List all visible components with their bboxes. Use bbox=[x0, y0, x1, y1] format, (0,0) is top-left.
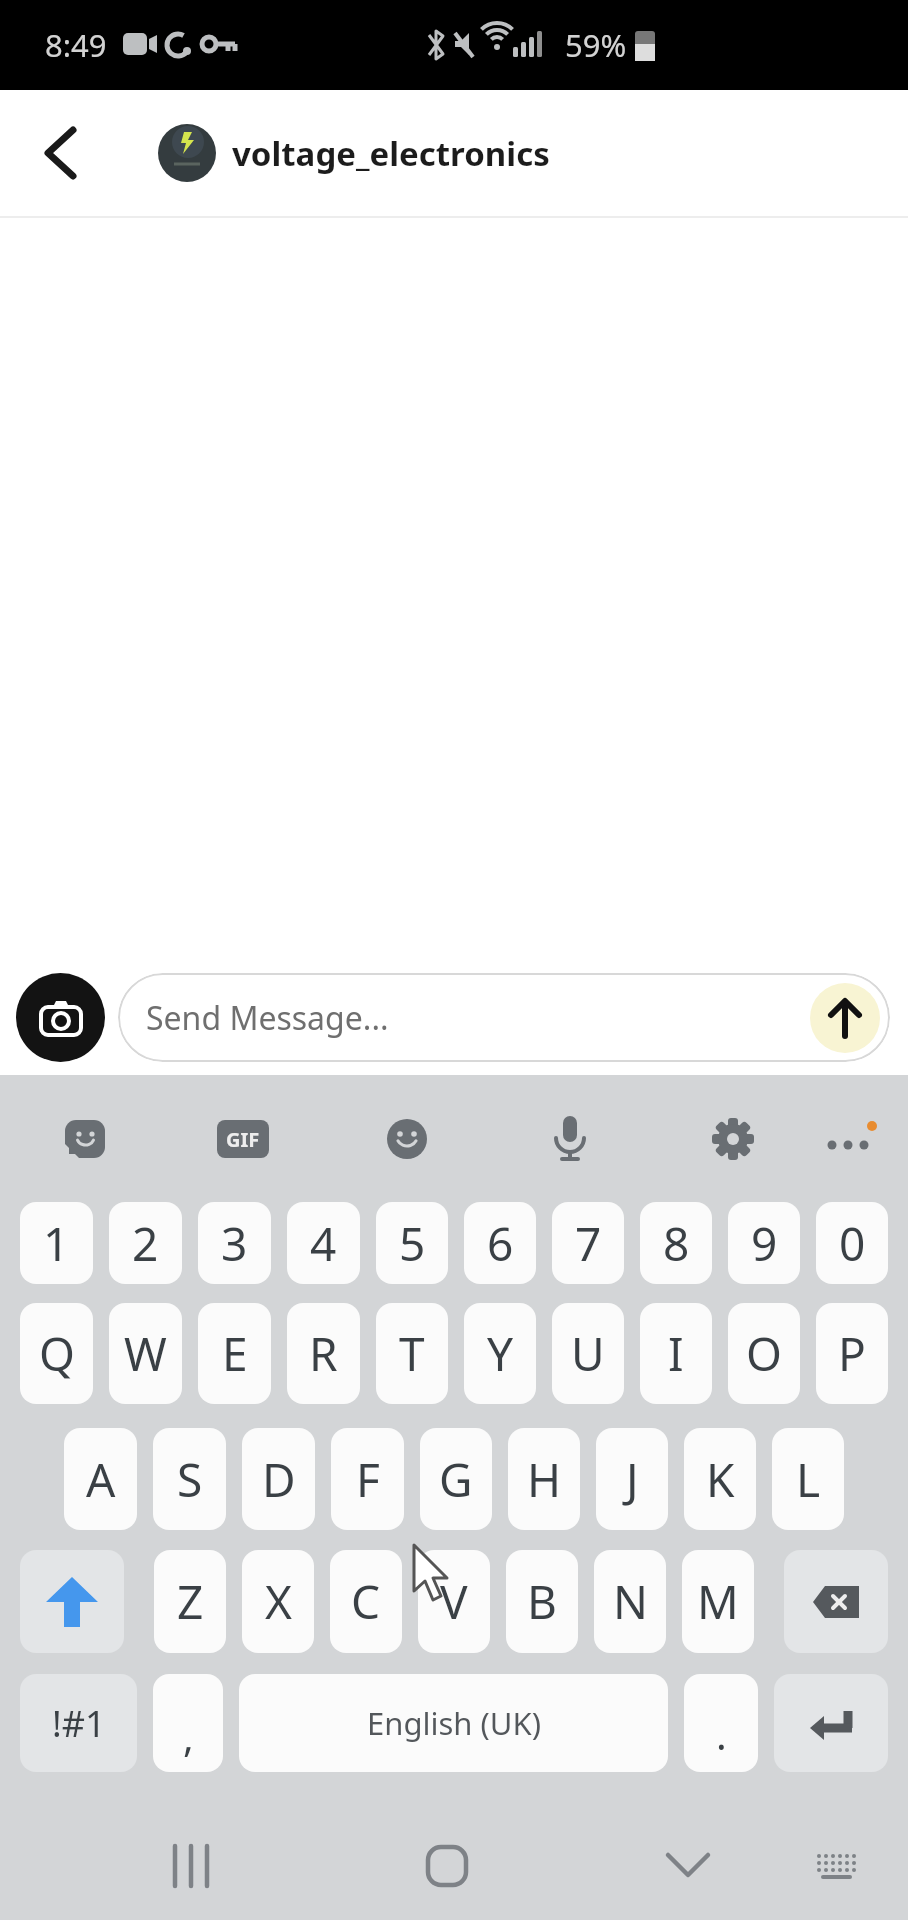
staticText: 9 bbox=[751, 1212, 778, 1275]
staticText: . bbox=[716, 1707, 727, 1761]
staticText: P bbox=[838, 1322, 866, 1385]
button[interactable] bbox=[791, 1821, 881, 1911]
button[interactable]: L bbox=[772, 1428, 844, 1530]
button[interactable]: E bbox=[198, 1303, 271, 1404]
button[interactable]: 3 bbox=[198, 1202, 271, 1284]
button[interactable]: . bbox=[684, 1674, 758, 1772]
staticText: K bbox=[706, 1448, 735, 1511]
button[interactable] bbox=[709, 1115, 757, 1163]
staticText: D bbox=[262, 1448, 296, 1511]
staticText: !#1 bbox=[52, 1699, 106, 1748]
staticText: W bbox=[124, 1322, 167, 1385]
button[interactable]: 2 bbox=[109, 1202, 182, 1284]
button[interactable] bbox=[824, 1111, 880, 1167]
button[interactable]: D bbox=[242, 1428, 315, 1530]
button[interactable] bbox=[20, 1550, 124, 1653]
button[interactable]: G bbox=[420, 1428, 492, 1530]
button[interactable]: F bbox=[331, 1428, 404, 1530]
button[interactable] bbox=[28, 121, 92, 185]
button[interactable]: V bbox=[418, 1550, 490, 1653]
button[interactable]: Q bbox=[20, 1303, 93, 1404]
button[interactable] bbox=[402, 1821, 492, 1911]
staticText: U bbox=[571, 1322, 605, 1385]
staticText: Z bbox=[177, 1570, 204, 1633]
button[interactable]: 6 bbox=[464, 1202, 536, 1284]
staticText: V bbox=[440, 1570, 468, 1633]
button[interactable] bbox=[643, 1821, 733, 1911]
button[interactable]: 4 bbox=[287, 1202, 360, 1284]
staticText: 7 bbox=[575, 1212, 602, 1275]
button[interactable]: H bbox=[508, 1428, 580, 1530]
button[interactable]: M bbox=[682, 1550, 754, 1653]
staticText: 0 bbox=[839, 1212, 866, 1275]
staticText: A bbox=[86, 1448, 116, 1511]
button[interactable]: , bbox=[153, 1674, 223, 1772]
staticText: 1 bbox=[43, 1212, 70, 1275]
button[interactable]: K bbox=[684, 1428, 756, 1530]
staticText: N bbox=[613, 1570, 648, 1633]
staticText: I bbox=[668, 1322, 684, 1385]
button[interactable]: 8 bbox=[640, 1202, 712, 1284]
staticText: Send Message... bbox=[146, 996, 389, 1040]
button[interactable]: U bbox=[552, 1303, 624, 1404]
staticText: E bbox=[222, 1322, 248, 1385]
button[interactable]: English (UK) bbox=[239, 1674, 668, 1772]
staticText: voltage_electronics bbox=[232, 131, 550, 176]
staticText: L bbox=[796, 1448, 821, 1511]
button[interactable] bbox=[62, 1115, 110, 1163]
staticText: 8:49 bbox=[45, 24, 107, 66]
staticText: Q bbox=[39, 1322, 75, 1385]
button[interactable]: P bbox=[816, 1303, 888, 1404]
staticText: 6 bbox=[487, 1212, 514, 1275]
button[interactable]: W bbox=[109, 1303, 182, 1404]
staticText: 3 bbox=[221, 1212, 248, 1275]
button[interactable] bbox=[383, 1115, 431, 1163]
staticText: , bbox=[183, 1709, 194, 1763]
button[interactable]: N bbox=[594, 1550, 666, 1653]
button[interactable]: C bbox=[330, 1550, 402, 1653]
staticText: B bbox=[527, 1570, 557, 1633]
staticText: 8 bbox=[663, 1212, 690, 1275]
button[interactable]: 0 bbox=[816, 1202, 888, 1284]
button[interactable]: Z bbox=[154, 1550, 226, 1653]
staticText: S bbox=[177, 1448, 203, 1511]
staticText: English (UK) bbox=[367, 1702, 541, 1744]
button[interactable]: A bbox=[64, 1428, 137, 1530]
button[interactable]: O bbox=[728, 1303, 800, 1404]
staticText: T bbox=[399, 1322, 425, 1385]
button[interactable]: 1 bbox=[20, 1202, 93, 1284]
button[interactable]: I bbox=[640, 1303, 712, 1404]
staticText: Y bbox=[487, 1322, 514, 1385]
button[interactable]: X bbox=[242, 1550, 314, 1653]
button[interactable]: 5 bbox=[376, 1202, 448, 1284]
staticText: J bbox=[626, 1448, 639, 1511]
staticText: H bbox=[527, 1448, 562, 1511]
button[interactable]: Y bbox=[464, 1303, 536, 1404]
staticText: 5 bbox=[399, 1212, 426, 1275]
button[interactable]: B bbox=[506, 1550, 578, 1653]
button[interactable]: 9 bbox=[728, 1202, 800, 1284]
staticText: C bbox=[351, 1570, 381, 1633]
staticText: 59% bbox=[565, 24, 627, 66]
staticText: GIF bbox=[226, 1126, 260, 1153]
staticText: X bbox=[265, 1570, 292, 1633]
button[interactable]: S bbox=[153, 1428, 226, 1530]
staticText: M bbox=[697, 1570, 739, 1633]
button[interactable]: !#1 bbox=[20, 1674, 137, 1772]
button[interactable]: T bbox=[376, 1303, 448, 1404]
button[interactable] bbox=[774, 1674, 888, 1772]
button[interactable]: R bbox=[287, 1303, 360, 1404]
button[interactable]: GIF bbox=[217, 1120, 269, 1158]
button[interactable] bbox=[16, 973, 105, 1062]
button[interactable] bbox=[784, 1550, 888, 1653]
button[interactable] bbox=[810, 983, 880, 1053]
staticText: 4 bbox=[310, 1212, 337, 1275]
button[interactable]: voltage_electronics bbox=[158, 124, 550, 182]
button[interactable]: 7 bbox=[552, 1202, 624, 1284]
button[interactable] bbox=[148, 1821, 238, 1911]
staticText: F bbox=[356, 1448, 380, 1511]
button[interactable]: J bbox=[596, 1428, 668, 1530]
button[interactable]: Send Message... bbox=[118, 973, 890, 1062]
button[interactable] bbox=[546, 1115, 594, 1163]
staticText: 2 bbox=[132, 1212, 159, 1275]
